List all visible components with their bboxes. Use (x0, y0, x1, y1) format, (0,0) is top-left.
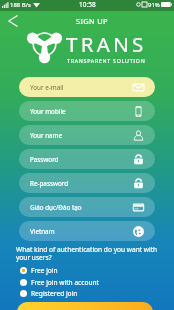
staticText: Your name (30, 131, 63, 140)
staticText: TRANS (66, 30, 147, 58)
button[interactable]: Your e-mail (19, 77, 155, 97)
staticText: Free join (31, 266, 58, 275)
button[interactable]: Free join (20, 266, 58, 275)
staticText: Free join with account (31, 278, 99, 287)
button[interactable]: Free join with account (20, 278, 99, 287)
button[interactable]: Your name (19, 125, 155, 145)
staticText: Registered join (31, 289, 78, 298)
staticText: SIGN UP (76, 16, 108, 26)
button[interactable]: Password (19, 149, 155, 169)
staticText: 91% (148, 1, 160, 9)
button[interactable]: Giáo dục/Đào tạo (19, 197, 155, 217)
staticText: 188 B/s (10, 1, 31, 9)
staticText: Password (30, 155, 59, 164)
button[interactable]: Back (3, 11, 22, 30)
staticText: 10:58 (79, 0, 96, 9)
staticText: Your e-mail (30, 83, 64, 92)
staticText: Giáo dục/Đào tạo (30, 203, 82, 212)
staticText: Re-password (30, 179, 69, 188)
staticText: Your mobile (30, 107, 66, 116)
staticText: What kind of authentication do you want … (16, 245, 172, 262)
button[interactable]: Re-password (19, 173, 155, 193)
button[interactable]: SIGN UP (17, 302, 153, 310)
staticText: Vietnam (30, 227, 55, 236)
button[interactable]: Registered join (20, 289, 78, 298)
staticText: TRANSPARENT SOLUTION (67, 57, 146, 64)
button[interactable]: Your mobile (19, 101, 155, 121)
button[interactable]: Vietnam (19, 221, 155, 241)
